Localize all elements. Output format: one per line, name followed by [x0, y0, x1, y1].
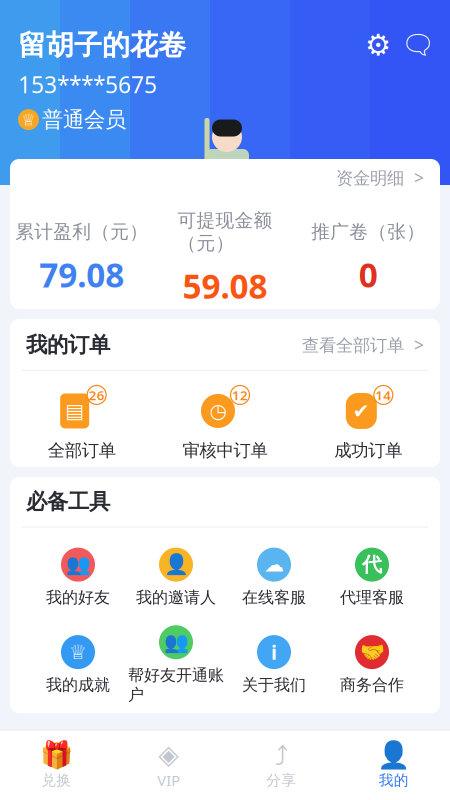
- button[interactable]: Messages: [398, 25, 438, 65]
- button[interactable]: ◷: [153, 385, 297, 461]
- button[interactable]: ♕: [18, 106, 126, 133]
- button[interactable]: ♕: [29, 631, 127, 699]
- staticText: i: [271, 639, 277, 665]
- staticText: ◈: [158, 739, 179, 770]
- staticText: 分享: [266, 771, 296, 789]
- staticText: 26: [89, 386, 105, 404]
- button[interactable]: Settings: [358, 25, 398, 65]
- staticText: 兑换: [41, 771, 71, 789]
- staticText: 资金明细 >: [336, 166, 424, 189]
- staticText: 12: [232, 386, 248, 404]
- staticText: 必备工具: [26, 488, 110, 515]
- staticText: ▤: [65, 400, 84, 422]
- staticText: 🎁: [40, 740, 73, 770]
- button[interactable]: 资金明细 >: [336, 166, 424, 189]
- staticText: 在线客服: [242, 588, 306, 607]
- staticText: 可提现金额（元）: [177, 209, 272, 255]
- staticText: 留胡子的花卷: [18, 28, 186, 62]
- staticText: ☁: [264, 553, 284, 576]
- staticText: 关于我们: [242, 675, 306, 695]
- button[interactable]: ◈: [112, 736, 225, 796]
- button[interactable]: 🎁: [0, 737, 112, 795]
- staticText: 我的邀请人: [136, 588, 216, 607]
- staticText: ♕: [69, 641, 87, 663]
- button[interactable]: 👥: [29, 544, 127, 611]
- button[interactable]: i: [225, 631, 323, 699]
- button[interactable]: ✔: [297, 385, 440, 461]
- button[interactable]: 👤: [127, 544, 225, 611]
- staticText: 🗨: [401, 30, 435, 60]
- button[interactable]: ☁: [225, 544, 323, 611]
- staticText: 👥: [65, 553, 90, 576]
- staticText: 推广卷（张）: [311, 220, 425, 243]
- staticText: 审核中订单: [182, 440, 267, 461]
- staticText: 代: [362, 552, 382, 577]
- staticText: 全部订单: [48, 440, 116, 461]
- staticText: 🤝: [359, 641, 384, 664]
- staticText: 普通会员: [42, 106, 126, 133]
- staticText: 14: [375, 386, 391, 404]
- staticText: 153****5675: [18, 69, 157, 99]
- staticText: ⚙: [365, 28, 391, 62]
- staticText: 帮好友开通账户: [128, 665, 224, 705]
- staticText: 59.08: [182, 264, 267, 308]
- button[interactable]: 🤝: [323, 631, 421, 699]
- staticText: 我的订单: [26, 332, 110, 358]
- staticText: VIP: [157, 770, 180, 790]
- staticText: 👤: [377, 740, 410, 770]
- staticText: 成功订单: [334, 440, 402, 461]
- staticText: 0: [359, 252, 378, 297]
- button[interactable]: 👥: [127, 621, 225, 709]
- staticText: ◷: [209, 400, 226, 422]
- staticText: 我的好友: [46, 588, 110, 607]
- staticText: ✔: [353, 400, 370, 422]
- button[interactable]: 👤: [337, 737, 450, 795]
- staticText: 我的成就: [46, 675, 110, 695]
- button[interactable]: ▤: [10, 385, 153, 461]
- staticText: ⤴: [275, 742, 288, 768]
- staticText: 我的: [379, 771, 409, 789]
- button[interactable]: ⤴: [225, 737, 337, 795]
- button[interactable]: 查看全部订单 >: [302, 333, 424, 356]
- staticText: ♕: [21, 110, 35, 129]
- staticText: 商务合作: [340, 675, 404, 695]
- staticText: 累计盈利（元）: [15, 220, 148, 243]
- button[interactable]: 代: [323, 544, 421, 611]
- staticText: 代理客服: [340, 588, 404, 607]
- staticText: 79.08: [39, 252, 124, 297]
- staticText: 👤: [163, 553, 188, 576]
- staticText: 👥: [163, 631, 188, 654]
- staticText: 查看全部订单 >: [302, 333, 424, 356]
